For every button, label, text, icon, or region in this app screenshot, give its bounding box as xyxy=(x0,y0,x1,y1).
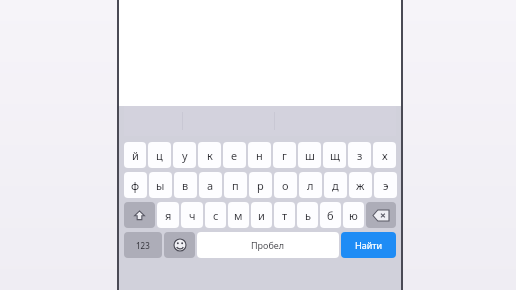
button[interactable]: ж xyxy=(349,172,372,198)
staticText: у xyxy=(182,148,188,163)
staticText: р xyxy=(257,178,264,193)
staticText: е xyxy=(231,148,238,163)
button[interactable]: 123 xyxy=(124,232,162,258)
button[interactable]: ы xyxy=(149,172,172,198)
staticText: и xyxy=(258,208,265,223)
button[interactable]: з xyxy=(348,142,371,168)
button[interactable]: Backspace xyxy=(366,202,396,228)
button[interactable]: е xyxy=(223,142,246,168)
staticText: ы xyxy=(156,178,165,193)
button[interactable]: о xyxy=(274,172,297,198)
button[interactable]: я xyxy=(157,202,179,228)
button[interactable]: в xyxy=(174,172,197,198)
button[interactable]: и xyxy=(251,202,272,228)
button[interactable]: Shift xyxy=(124,202,155,228)
button[interactable]: р xyxy=(249,172,272,198)
button[interactable]: б xyxy=(320,202,341,228)
staticText: н xyxy=(256,148,263,163)
button[interactable]: й xyxy=(124,142,146,168)
button[interactable]: д xyxy=(324,172,347,198)
button[interactable]: Emoji xyxy=(164,232,195,258)
staticText: с xyxy=(213,208,219,223)
button[interactable]: к xyxy=(198,142,221,168)
staticText: т xyxy=(282,208,288,223)
button[interactable]: Пробел xyxy=(197,232,339,258)
button[interactable]: с xyxy=(205,202,226,228)
staticText: б xyxy=(327,208,334,223)
staticText: о xyxy=(282,178,289,193)
staticText: а xyxy=(207,178,214,193)
button[interactable]: х xyxy=(373,142,396,168)
staticText: э xyxy=(383,178,389,193)
staticText: к xyxy=(207,148,213,163)
button[interactable]: ю xyxy=(343,202,364,228)
staticText: Пробел xyxy=(251,239,285,251)
button[interactable]: э xyxy=(374,172,397,198)
button[interactable]: щ xyxy=(323,142,346,168)
staticText: ц xyxy=(156,148,163,163)
button[interactable]: м xyxy=(228,202,249,228)
staticText: д xyxy=(332,178,339,193)
button[interactable]: ц xyxy=(148,142,171,168)
staticText: Найти xyxy=(355,239,383,251)
staticText: л xyxy=(307,178,314,193)
button[interactable]: г xyxy=(273,142,296,168)
button[interactable]: ф xyxy=(124,172,147,198)
button[interactable]: Найти xyxy=(341,232,396,258)
button[interactable]: у xyxy=(173,142,196,168)
staticText: ф xyxy=(131,178,140,193)
staticText: м xyxy=(234,208,243,223)
button[interactable]: т xyxy=(274,202,295,228)
button[interactable]: л xyxy=(299,172,322,198)
button[interactable]: ш xyxy=(298,142,321,168)
button[interactable]: п xyxy=(224,172,247,198)
staticText: ч xyxy=(189,208,196,223)
button[interactable]: ь xyxy=(297,202,318,228)
button[interactable]: н xyxy=(248,142,271,168)
button[interactable]: ч xyxy=(181,202,203,228)
staticText: я xyxy=(165,208,172,223)
staticText: х xyxy=(382,148,388,163)
staticText: г xyxy=(282,148,287,163)
staticText: ю xyxy=(349,208,358,223)
staticText: ь xyxy=(305,208,311,223)
staticText: й xyxy=(132,148,139,163)
staticText: з xyxy=(357,148,363,163)
staticText: п xyxy=(232,178,239,193)
staticText: щ xyxy=(330,148,340,163)
staticText: ш xyxy=(305,148,315,163)
staticText: в xyxy=(182,178,189,193)
staticText: 123 xyxy=(136,240,150,251)
button[interactable]: а xyxy=(199,172,222,198)
staticText: ж xyxy=(356,178,365,193)
